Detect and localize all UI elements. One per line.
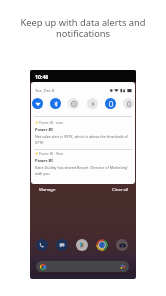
button[interactable]: Quick setting	[87, 98, 98, 109]
button[interactable]: Clear all	[112, 186, 129, 192]
staticText: Katie Dudley has shared Report 'Director…	[35, 165, 132, 177]
button[interactable]: Chrome	[96, 239, 108, 251]
button[interactable]: Phone	[36, 239, 48, 251]
button[interactable]: Messages	[56, 239, 68, 251]
staticText: Net sales alert is $97K, which is above …	[35, 134, 132, 146]
staticText: Power BI	[35, 158, 53, 163]
button[interactable]: Play Store	[76, 239, 88, 251]
staticText: Power BI	[35, 127, 53, 132]
staticText: Power BI · Now	[39, 151, 64, 156]
staticText: Power BI · now	[39, 120, 63, 125]
button[interactable]: Camera	[116, 239, 128, 251]
button[interactable]: Quick setting	[123, 98, 134, 109]
button[interactable]: Power BI · Now	[35, 151, 132, 177]
staticText: Tue, Dec 8	[35, 88, 55, 93]
staticText: 10:48	[35, 73, 49, 80]
button[interactable]: Search	[36, 261, 129, 272]
button[interactable]: Power BI · now	[35, 120, 132, 146]
button[interactable]: Manage	[39, 186, 56, 192]
button[interactable]: Quick setting	[50, 98, 61, 109]
staticText: Keep up with data alerts and notificatio…	[8, 16, 158, 40]
button[interactable]: Quick setting	[68, 98, 79, 109]
button[interactable]: Quick setting	[105, 98, 116, 109]
button[interactable]: Quick setting	[32, 98, 43, 109]
